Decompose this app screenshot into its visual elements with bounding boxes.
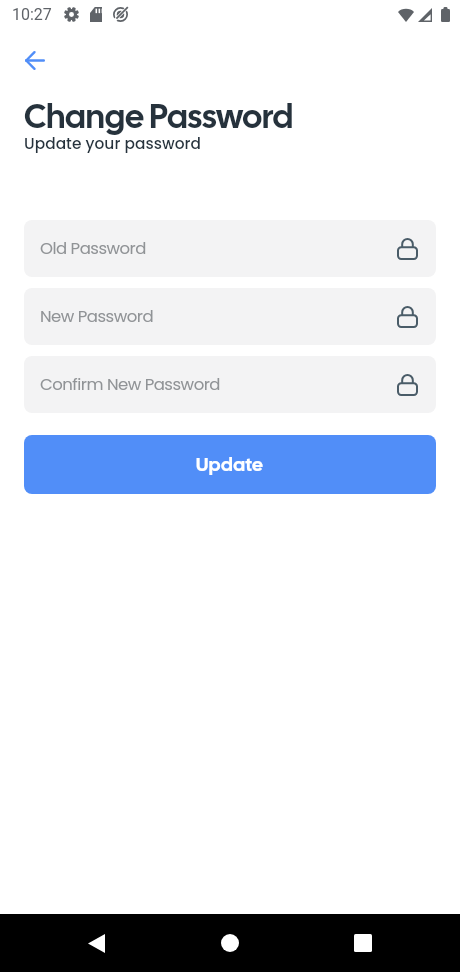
staticText: Change Password xyxy=(24,94,294,138)
staticText: New Password xyxy=(40,305,154,328)
button[interactable]: Back xyxy=(74,920,119,966)
button[interactable]: Home xyxy=(207,920,252,966)
button[interactable]: Update xyxy=(24,435,436,494)
button[interactable]: Back xyxy=(13,38,57,82)
staticText: Old Password xyxy=(40,237,146,260)
button[interactable]: Old Password xyxy=(24,220,436,277)
button[interactable]: Recent apps xyxy=(340,920,385,966)
button[interactable]: Confirm New Password xyxy=(24,356,436,413)
button[interactable]: New Password xyxy=(24,288,436,345)
staticText: Update xyxy=(196,452,264,477)
staticText: Confirm New Password xyxy=(40,373,220,396)
staticText: Update your password xyxy=(24,133,201,155)
staticText: 10:27 xyxy=(12,5,52,24)
